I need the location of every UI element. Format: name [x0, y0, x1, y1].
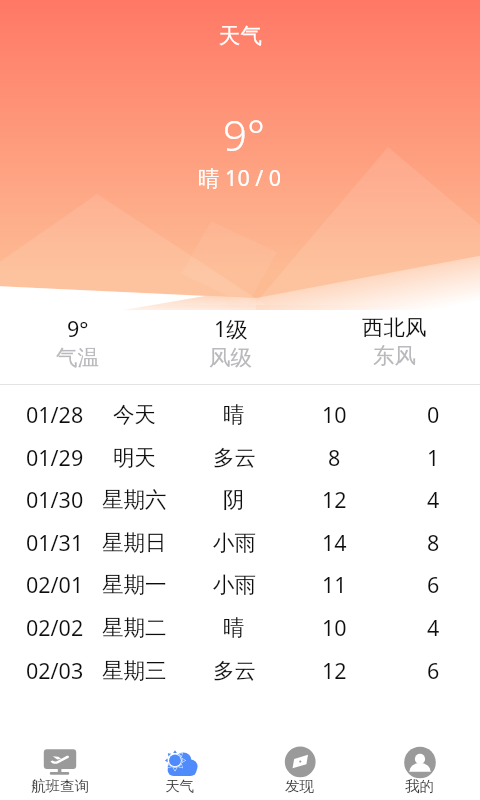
staticText: 天气: [165, 777, 195, 795]
button[interactable]: 01/28: [0, 393, 480, 435]
staticText: 天气: [219, 22, 262, 49]
staticText: 多云: [213, 444, 256, 471]
staticText: 11: [322, 570, 347, 599]
staticText: 东风: [373, 342, 416, 369]
staticText: 晴: [223, 401, 245, 428]
staticText: 航班查询: [31, 777, 90, 795]
staticText: 气温: [56, 344, 99, 371]
staticText: 星期日: [102, 529, 167, 556]
button[interactable]: 西北风: [334, 310, 454, 385]
button[interactable]: 9°: [17, 310, 137, 385]
staticText: 01/28: [26, 400, 84, 429]
staticText: 西北风: [362, 314, 427, 341]
staticText: 4: [427, 485, 440, 514]
staticText: 10: [322, 400, 347, 429]
staticText: 01/31: [26, 528, 84, 557]
staticText: 多云: [213, 657, 256, 684]
staticText: 我的: [405, 777, 435, 795]
staticText: 1级: [214, 314, 248, 343]
staticText: 8: [328, 443, 341, 472]
button[interactable]: 01/31: [0, 521, 480, 563]
staticText: 晴 10 / 0: [198, 163, 282, 192]
staticText: 4: [427, 613, 440, 642]
staticText: 10: [322, 613, 347, 642]
staticText: 星期二: [102, 614, 167, 641]
staticText: 阴: [223, 486, 245, 513]
staticText: 6: [427, 656, 440, 685]
staticText: 小雨: [213, 571, 256, 598]
staticText: 风级: [209, 344, 252, 371]
button[interactable]: 天气: [120, 735, 240, 800]
staticText: 01/29: [26, 443, 84, 472]
staticText: 01/30: [26, 485, 84, 514]
button[interactable]: 02/03: [0, 649, 480, 691]
button[interactable]: 航班查询: [0, 735, 120, 800]
button[interactable]: 发现: [240, 735, 360, 800]
staticText: 小雨: [213, 529, 256, 556]
staticText: 12: [322, 485, 347, 514]
staticText: 星期一: [102, 571, 167, 598]
staticText: 发现: [285, 777, 315, 795]
staticText: 今天: [113, 401, 156, 428]
staticText: 8: [427, 528, 440, 557]
staticText: 晴: [223, 614, 245, 641]
button[interactable]: 我的: [360, 735, 480, 800]
staticText: 14: [322, 528, 347, 557]
button[interactable]: 1级: [170, 310, 290, 385]
staticText: 9°: [223, 106, 265, 163]
staticText: 0: [427, 400, 440, 429]
button[interactable]: 01/29: [0, 436, 480, 478]
staticText: 1: [427, 443, 440, 472]
button[interactable]: 02/02: [0, 606, 480, 648]
button[interactable]: 01/30: [0, 478, 480, 520]
staticText: 12: [322, 656, 347, 685]
staticText: 02/02: [26, 613, 84, 642]
staticText: 星期三: [102, 657, 167, 684]
button[interactable]: 02/01: [0, 563, 480, 605]
staticText: 6: [427, 570, 440, 599]
staticText: 02/01: [26, 570, 84, 599]
staticText: 星期六: [102, 486, 167, 513]
staticText: 明天: [113, 444, 156, 471]
staticText: 02/03: [26, 656, 84, 685]
staticText: 9°: [67, 314, 89, 343]
